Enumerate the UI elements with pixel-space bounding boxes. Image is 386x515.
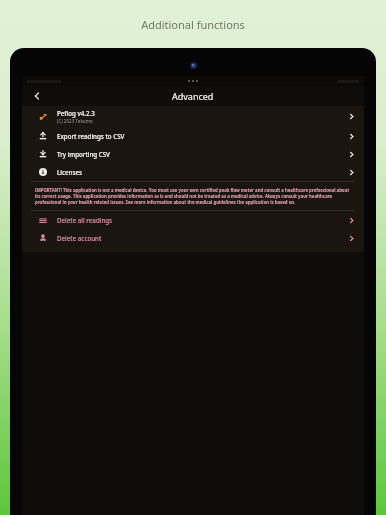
staticText: Additional functions: [141, 17, 245, 32]
button[interactable]: Delete account: [22, 229, 364, 247]
staticText: Try importing CSV: [57, 150, 110, 158]
button[interactable]: Delete all readings: [22, 211, 364, 229]
button[interactable]: Peflog v4.2.3: [22, 106, 364, 127]
staticText: Peflog v4.2.3: [57, 109, 95, 117]
staticText: Export readings to CSV: [57, 132, 125, 140]
button[interactable]: Export readings to CSV: [22, 127, 364, 145]
button[interactable]: Licenses: [22, 163, 364, 181]
staticText: Licenses: [57, 168, 83, 176]
staticText: Delete all readings: [57, 216, 113, 224]
button[interactable]: Try importing CSV: [22, 145, 364, 163]
staticText: (C) 2023 Tekumo: [57, 118, 93, 124]
staticText: Delete account: [57, 234, 102, 242]
staticText: IMPORTANT! This application is not a med…: [35, 187, 352, 205]
staticText: Advanced: [172, 90, 214, 102]
button[interactable]: Back: [26, 86, 48, 105]
